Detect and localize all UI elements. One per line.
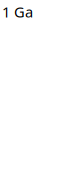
staticText: 1 Ga	[2, 2, 33, 21]
